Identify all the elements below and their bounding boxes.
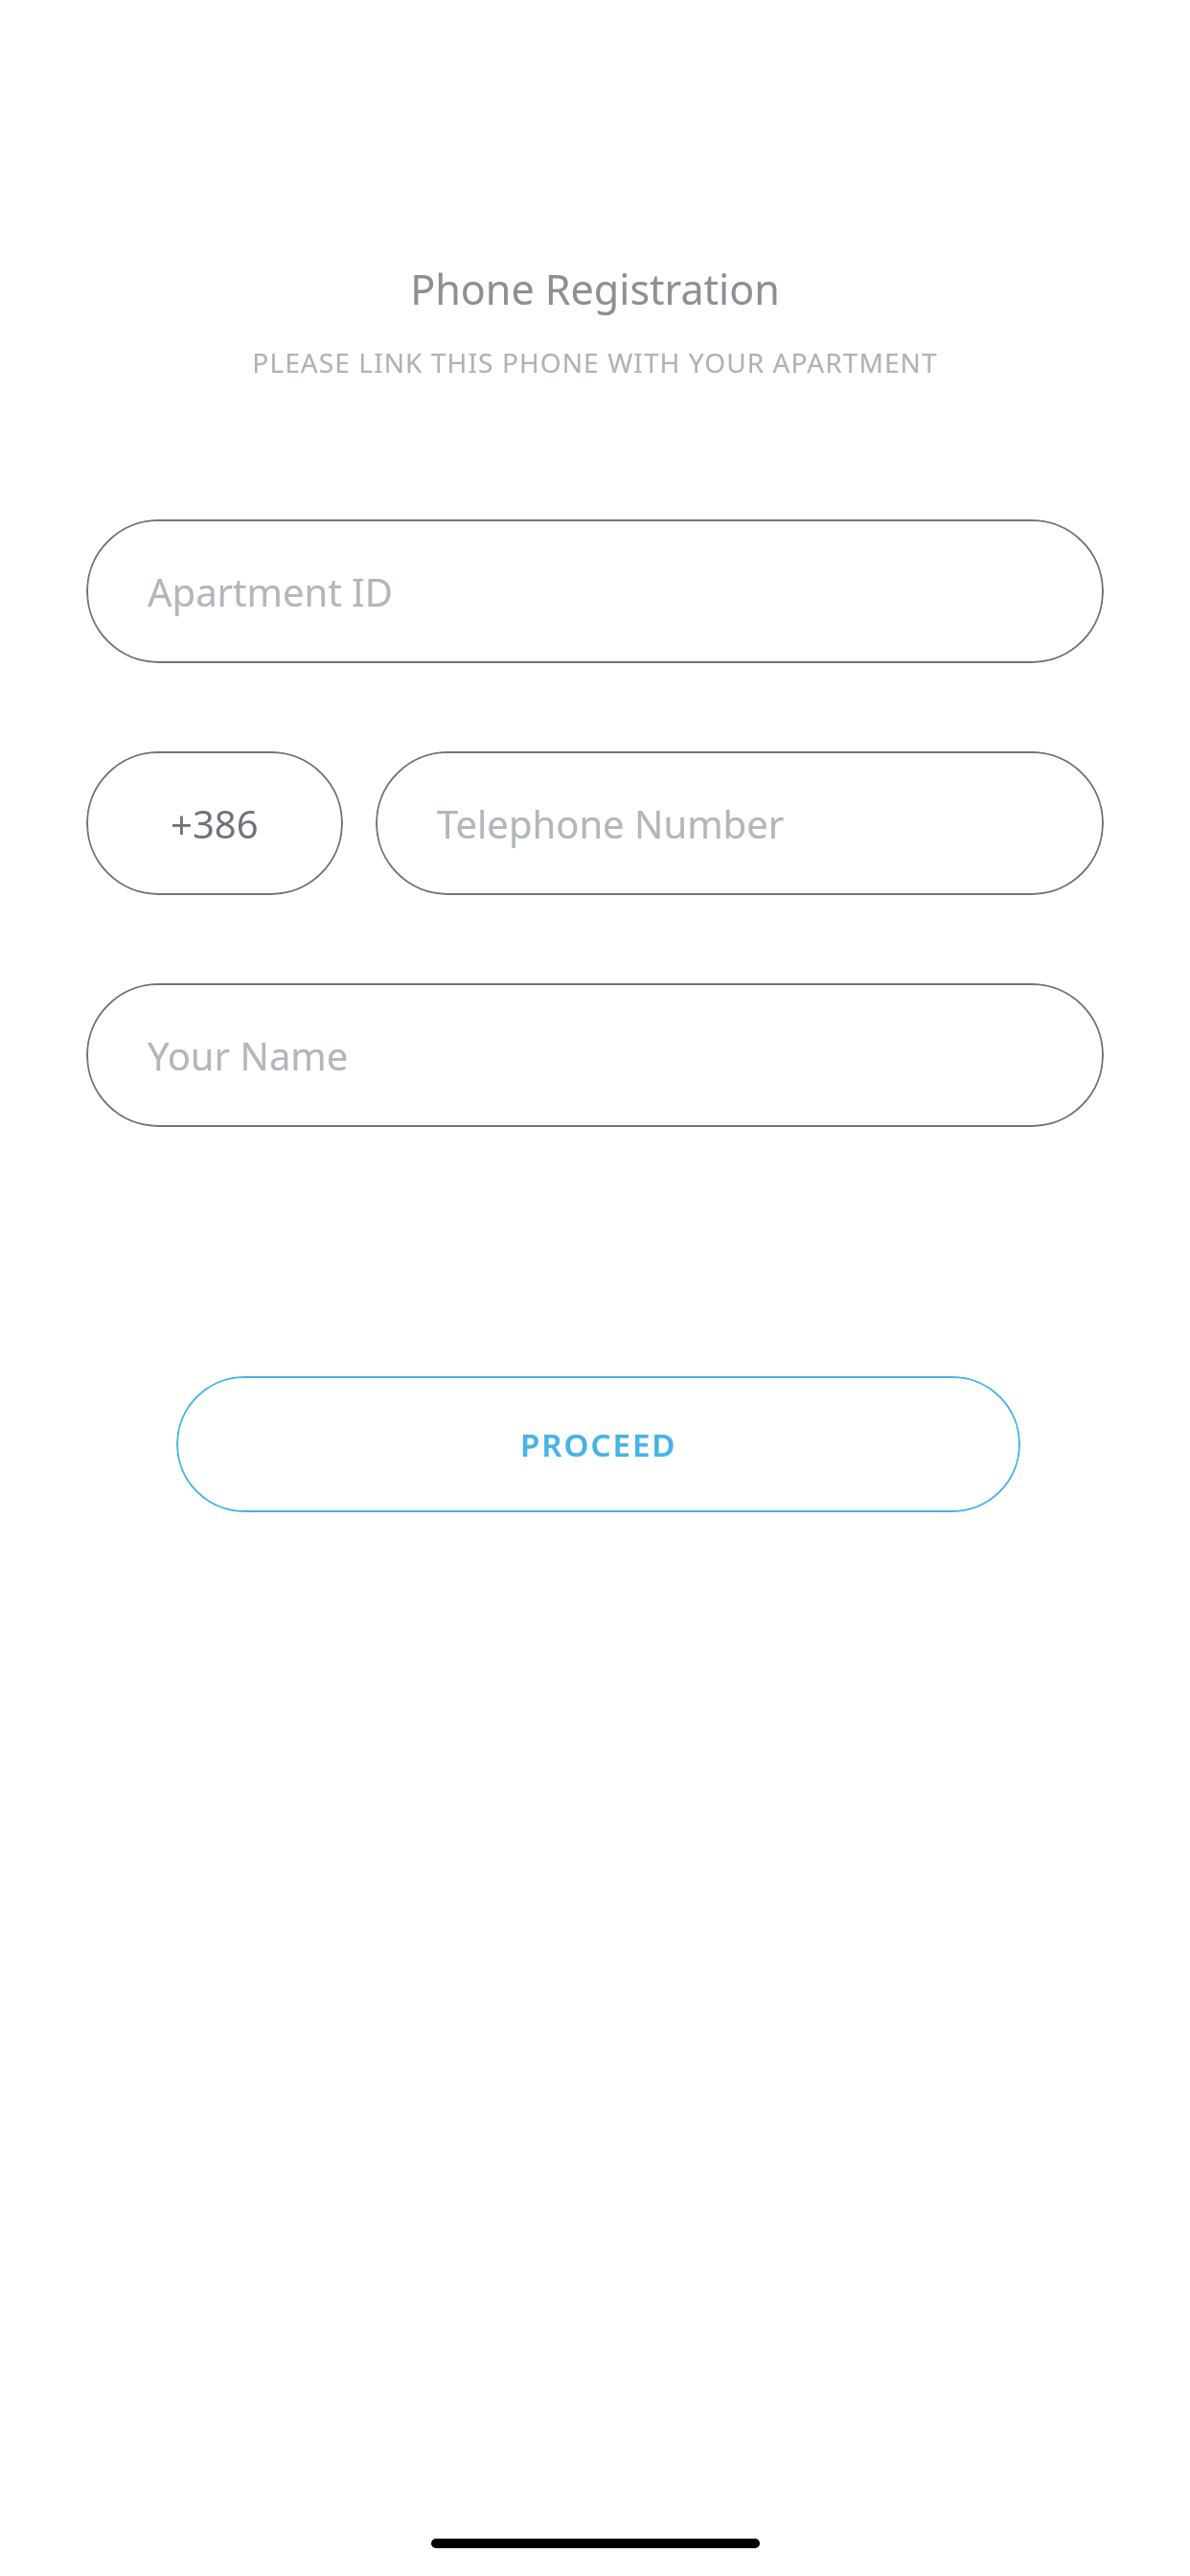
- button[interactable]: PROCEED: [176, 1376, 1020, 1512]
- staticText: Telephone Number: [437, 797, 785, 849]
- staticText: Phone Registration: [0, 261, 1190, 317]
- button[interactable]: Your Name: [86, 983, 1104, 1127]
- button[interactable]: Telephone Number: [376, 751, 1104, 895]
- button[interactable]: Apartment ID: [86, 519, 1104, 663]
- staticText: Your Name: [148, 1029, 349, 1081]
- staticText: Apartment ID: [148, 565, 393, 617]
- button[interactable]: +386: [86, 751, 343, 895]
- staticText: +386: [171, 797, 259, 849]
- staticText: PROCEED: [520, 1423, 677, 1466]
- staticText: PLEASE LINK THIS PHONE WITH YOUR APARTME…: [0, 344, 1190, 380]
